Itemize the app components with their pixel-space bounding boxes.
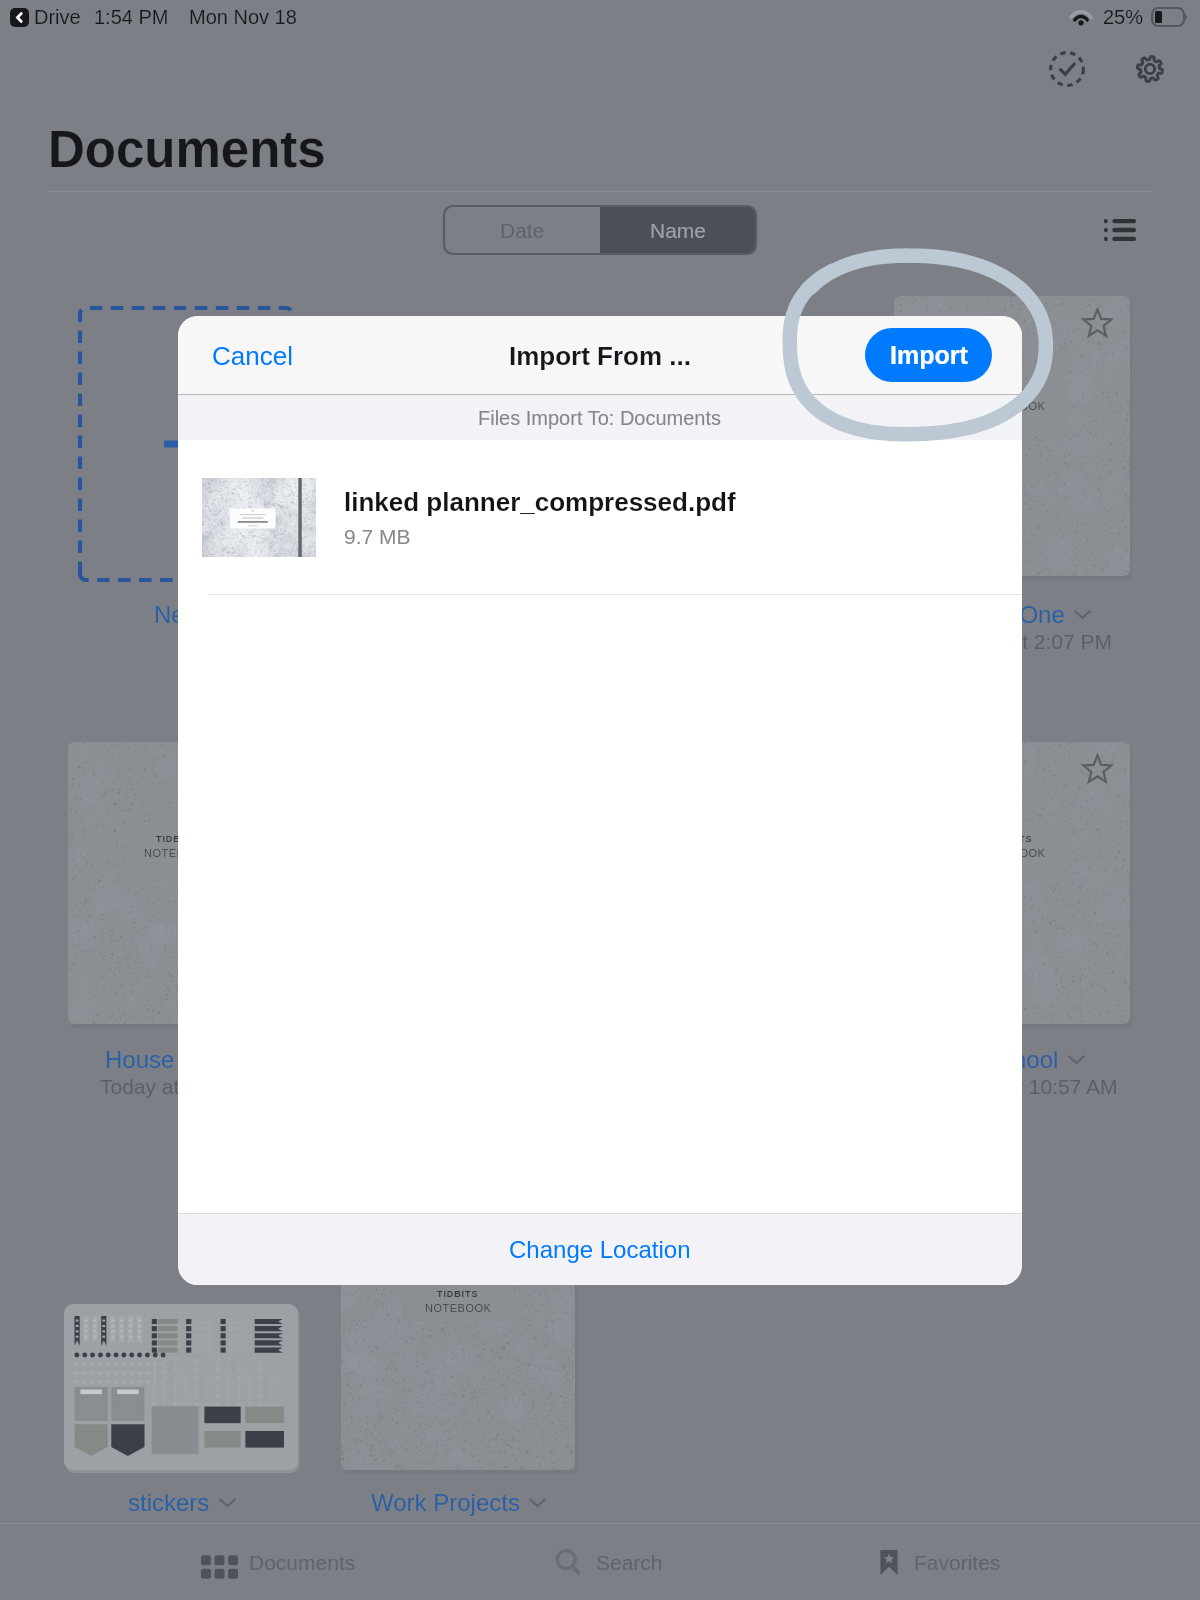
staticText: New Document <box>154 601 319 628</box>
button[interactable]: TIDBITS <box>68 742 286 1024</box>
button[interactable] <box>64 1304 298 1470</box>
staticText: Cancel <box>212 341 293 370</box>
button[interactable]: Name <box>600 206 756 254</box>
staticText: NOTEBOOK <box>144 847 211 859</box>
button[interactable]: Cancel <box>198 331 307 380</box>
staticText: NOTEBOOK <box>696 416 763 428</box>
staticText: Yesterday at 10:57 AM <box>907 1075 1118 1098</box>
button[interactable]: Work Projects <box>341 1489 575 1516</box>
staticText: House Plans <box>105 1046 242 1073</box>
button[interactable]: Back to Drive <box>10 8 29 27</box>
staticText: 25% <box>1103 6 1144 28</box>
staticText: Old School <box>941 1046 1059 1073</box>
staticText: Yesterday at 2:07 PM <box>912 630 1113 653</box>
button[interactable]: TIDBITS <box>345 318 563 578</box>
button[interactable]: TIDBITS <box>620 318 838 578</box>
staticText: TIDBITS <box>991 834 1033 844</box>
button[interactable]: Import <box>865 328 992 382</box>
staticText: Import From ... <box>509 341 691 370</box>
staticText: stickers <box>128 1489 210 1516</box>
staticText: Documents <box>249 1551 356 1574</box>
staticText: Change Location <box>509 1236 691 1263</box>
button[interactable]: Search <box>443 1524 773 1600</box>
staticText: 1:54 PM <box>94 6 169 28</box>
button[interactable]: stickers <box>64 1489 298 1516</box>
button[interactable]: TIDBITS <box>894 296 1130 576</box>
staticText: TIDBITS <box>437 1289 479 1299</box>
staticText: linked planner_compressed.pdf <box>344 487 736 516</box>
staticText: NOTEBOOK <box>425 1302 492 1314</box>
staticText: NOTEBOOK <box>979 847 1046 859</box>
button[interactable]: Journal One <box>894 601 1130 653</box>
staticText: 9.7 MB <box>344 525 411 548</box>
button[interactable]: TIDBITS <box>894 742 1130 1024</box>
staticText: Journal One <box>934 601 1065 628</box>
button[interactable]: Old School <box>894 1046 1130 1098</box>
button[interactable]: New Document <box>80 308 292 580</box>
staticText: TIDBITS <box>156 834 198 844</box>
staticText: TIDBITS <box>991 387 1033 397</box>
button[interactable]: List view <box>1096 206 1144 254</box>
staticText: Files Import To: Documents <box>478 407 722 429</box>
staticText: Mon Nov 18 <box>189 6 297 28</box>
staticText: Name <box>650 219 707 242</box>
button[interactable]: linked planner_compressed.pdf <box>178 440 1022 595</box>
button[interactable]: Select items <box>1039 41 1095 97</box>
staticText: NOTEBOOK <box>421 416 488 428</box>
staticText: TIDBITS <box>708 403 750 413</box>
staticText: Today at 11:12 AM <box>100 1075 273 1098</box>
button[interactable]: TIDBITS <box>341 1280 575 1470</box>
button[interactable]: Change Location <box>178 1214 1022 1285</box>
staticText: Search <box>596 1551 663 1574</box>
staticText: Favorites <box>914 1551 1001 1574</box>
staticText: Drive <box>34 6 81 28</box>
button[interactable]: Documents <box>113 1524 443 1600</box>
staticText: Work Projects <box>371 1489 520 1516</box>
staticText: NOTEBOOK <box>979 400 1046 412</box>
staticText: Documents <box>48 121 326 178</box>
button[interactable]: Date <box>444 206 600 254</box>
staticText: Date <box>500 219 545 242</box>
staticText: Import <box>890 341 968 369</box>
button[interactable]: Favorites <box>773 1524 1103 1600</box>
button[interactable]: House Plans <box>68 1046 304 1098</box>
button[interactable]: Settings <box>1122 41 1178 97</box>
button[interactable]: New Document <box>130 601 342 628</box>
